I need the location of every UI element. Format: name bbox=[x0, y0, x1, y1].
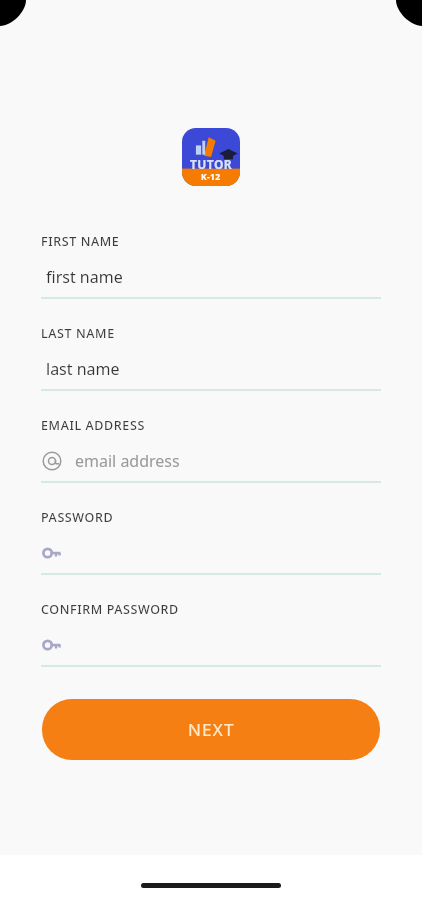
button[interactable]: App logo bbox=[182, 128, 240, 186]
staticText: CONFIRM PASSWORD bbox=[41, 601, 179, 618]
staticText: TUTOR bbox=[190, 156, 233, 172]
button[interactable]: NEXT bbox=[42, 699, 380, 760]
button[interactable]: FIRST NAME bbox=[41, 233, 381, 299]
staticText: first name bbox=[46, 266, 123, 288]
staticText: K-12 bbox=[201, 171, 221, 183]
staticText: NEXT bbox=[188, 718, 235, 741]
staticText: LAST NAME bbox=[41, 325, 115, 342]
staticText: last name bbox=[46, 358, 120, 380]
button[interactable]: PASSWORD bbox=[41, 509, 381, 575]
staticText: PASSWORD bbox=[41, 509, 114, 526]
button[interactable]: EMAIL ADDRESS bbox=[41, 417, 381, 483]
button[interactable]: LAST NAME bbox=[41, 325, 381, 391]
staticText: EMAIL ADDRESS bbox=[41, 417, 145, 434]
staticText: email address bbox=[75, 450, 180, 472]
button[interactable]: CONFIRM PASSWORD bbox=[41, 601, 381, 667]
staticText: FIRST NAME bbox=[41, 233, 120, 250]
